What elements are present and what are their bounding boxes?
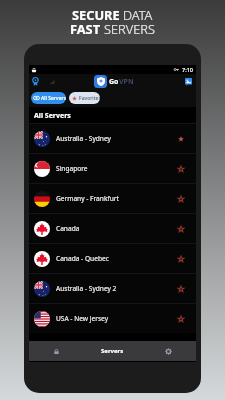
button[interactable]: Account [185,78,192,86]
button[interactable]: Canada [29,213,196,243]
staticText: All Servers [34,111,71,121]
staticText: SERVERS [104,20,155,37]
staticText: VPN [119,77,134,87]
button[interactable]: Singapore [29,153,196,183]
staticText: Singapore [56,164,88,173]
staticText: Australia - Sydney 2 [56,284,117,293]
button[interactable]: All Servers [31,92,66,104]
staticText: 7:10 [182,66,193,73]
button[interactable]: Favorites [69,92,100,104]
staticText: Australia - Sydney [56,134,111,143]
staticText: FAST [70,20,104,37]
staticText: SECURE [72,6,123,23]
button[interactable]: Servers [84,341,140,361]
button[interactable]: Australia - Sydney [29,123,196,153]
button[interactable]: Premium [32,77,39,86]
button[interactable]: USA - New Jersey [29,303,196,333]
staticText: Favorites [79,95,100,102]
staticText: Canada - Quebec [56,254,109,263]
staticText: Servers [101,347,124,355]
button[interactable]: Canada - Quebec [29,243,196,273]
button[interactable]: Australia - Sydney 2 [29,273,196,303]
staticText: Germany - Frankfurt [56,194,119,203]
button[interactable]: VPN [29,341,84,361]
staticText: DATA [123,6,153,23]
button[interactable]: Settings [140,341,196,361]
button[interactable]: Signal [49,79,55,85]
staticText: Canada [56,224,80,233]
staticText: All Servers [41,95,66,102]
staticText: Go [109,77,119,87]
button[interactable]: Germany - Frankfurt [29,183,196,213]
staticText: USA - New Jersey [56,314,109,323]
